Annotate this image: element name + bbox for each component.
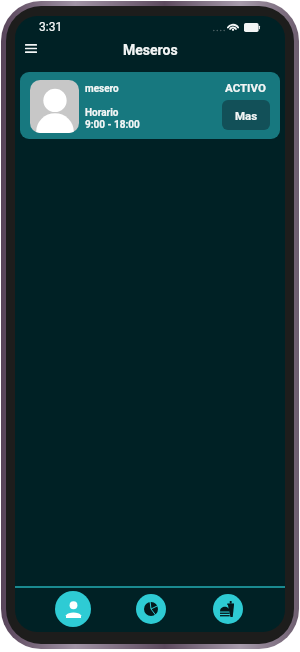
button[interactable]: Mas [222,100,270,130]
button[interactable]: Open navigation menu [19,36,43,60]
staticText: mesero [85,83,119,95]
staticText: 9:00 - 18:00 [85,119,140,131]
button[interactable]: Waiters [55,591,91,627]
button[interactable]: Food menu [213,594,243,624]
button[interactable]: Statistics [136,594,166,624]
staticText: Horario [85,107,119,119]
staticText: Mas [235,109,258,122]
button[interactable]: mesero [20,72,280,139]
staticText: 3:31 [39,20,63,34]
staticText: ACTIVO [225,81,266,94]
staticText: Meseros [123,42,178,58]
